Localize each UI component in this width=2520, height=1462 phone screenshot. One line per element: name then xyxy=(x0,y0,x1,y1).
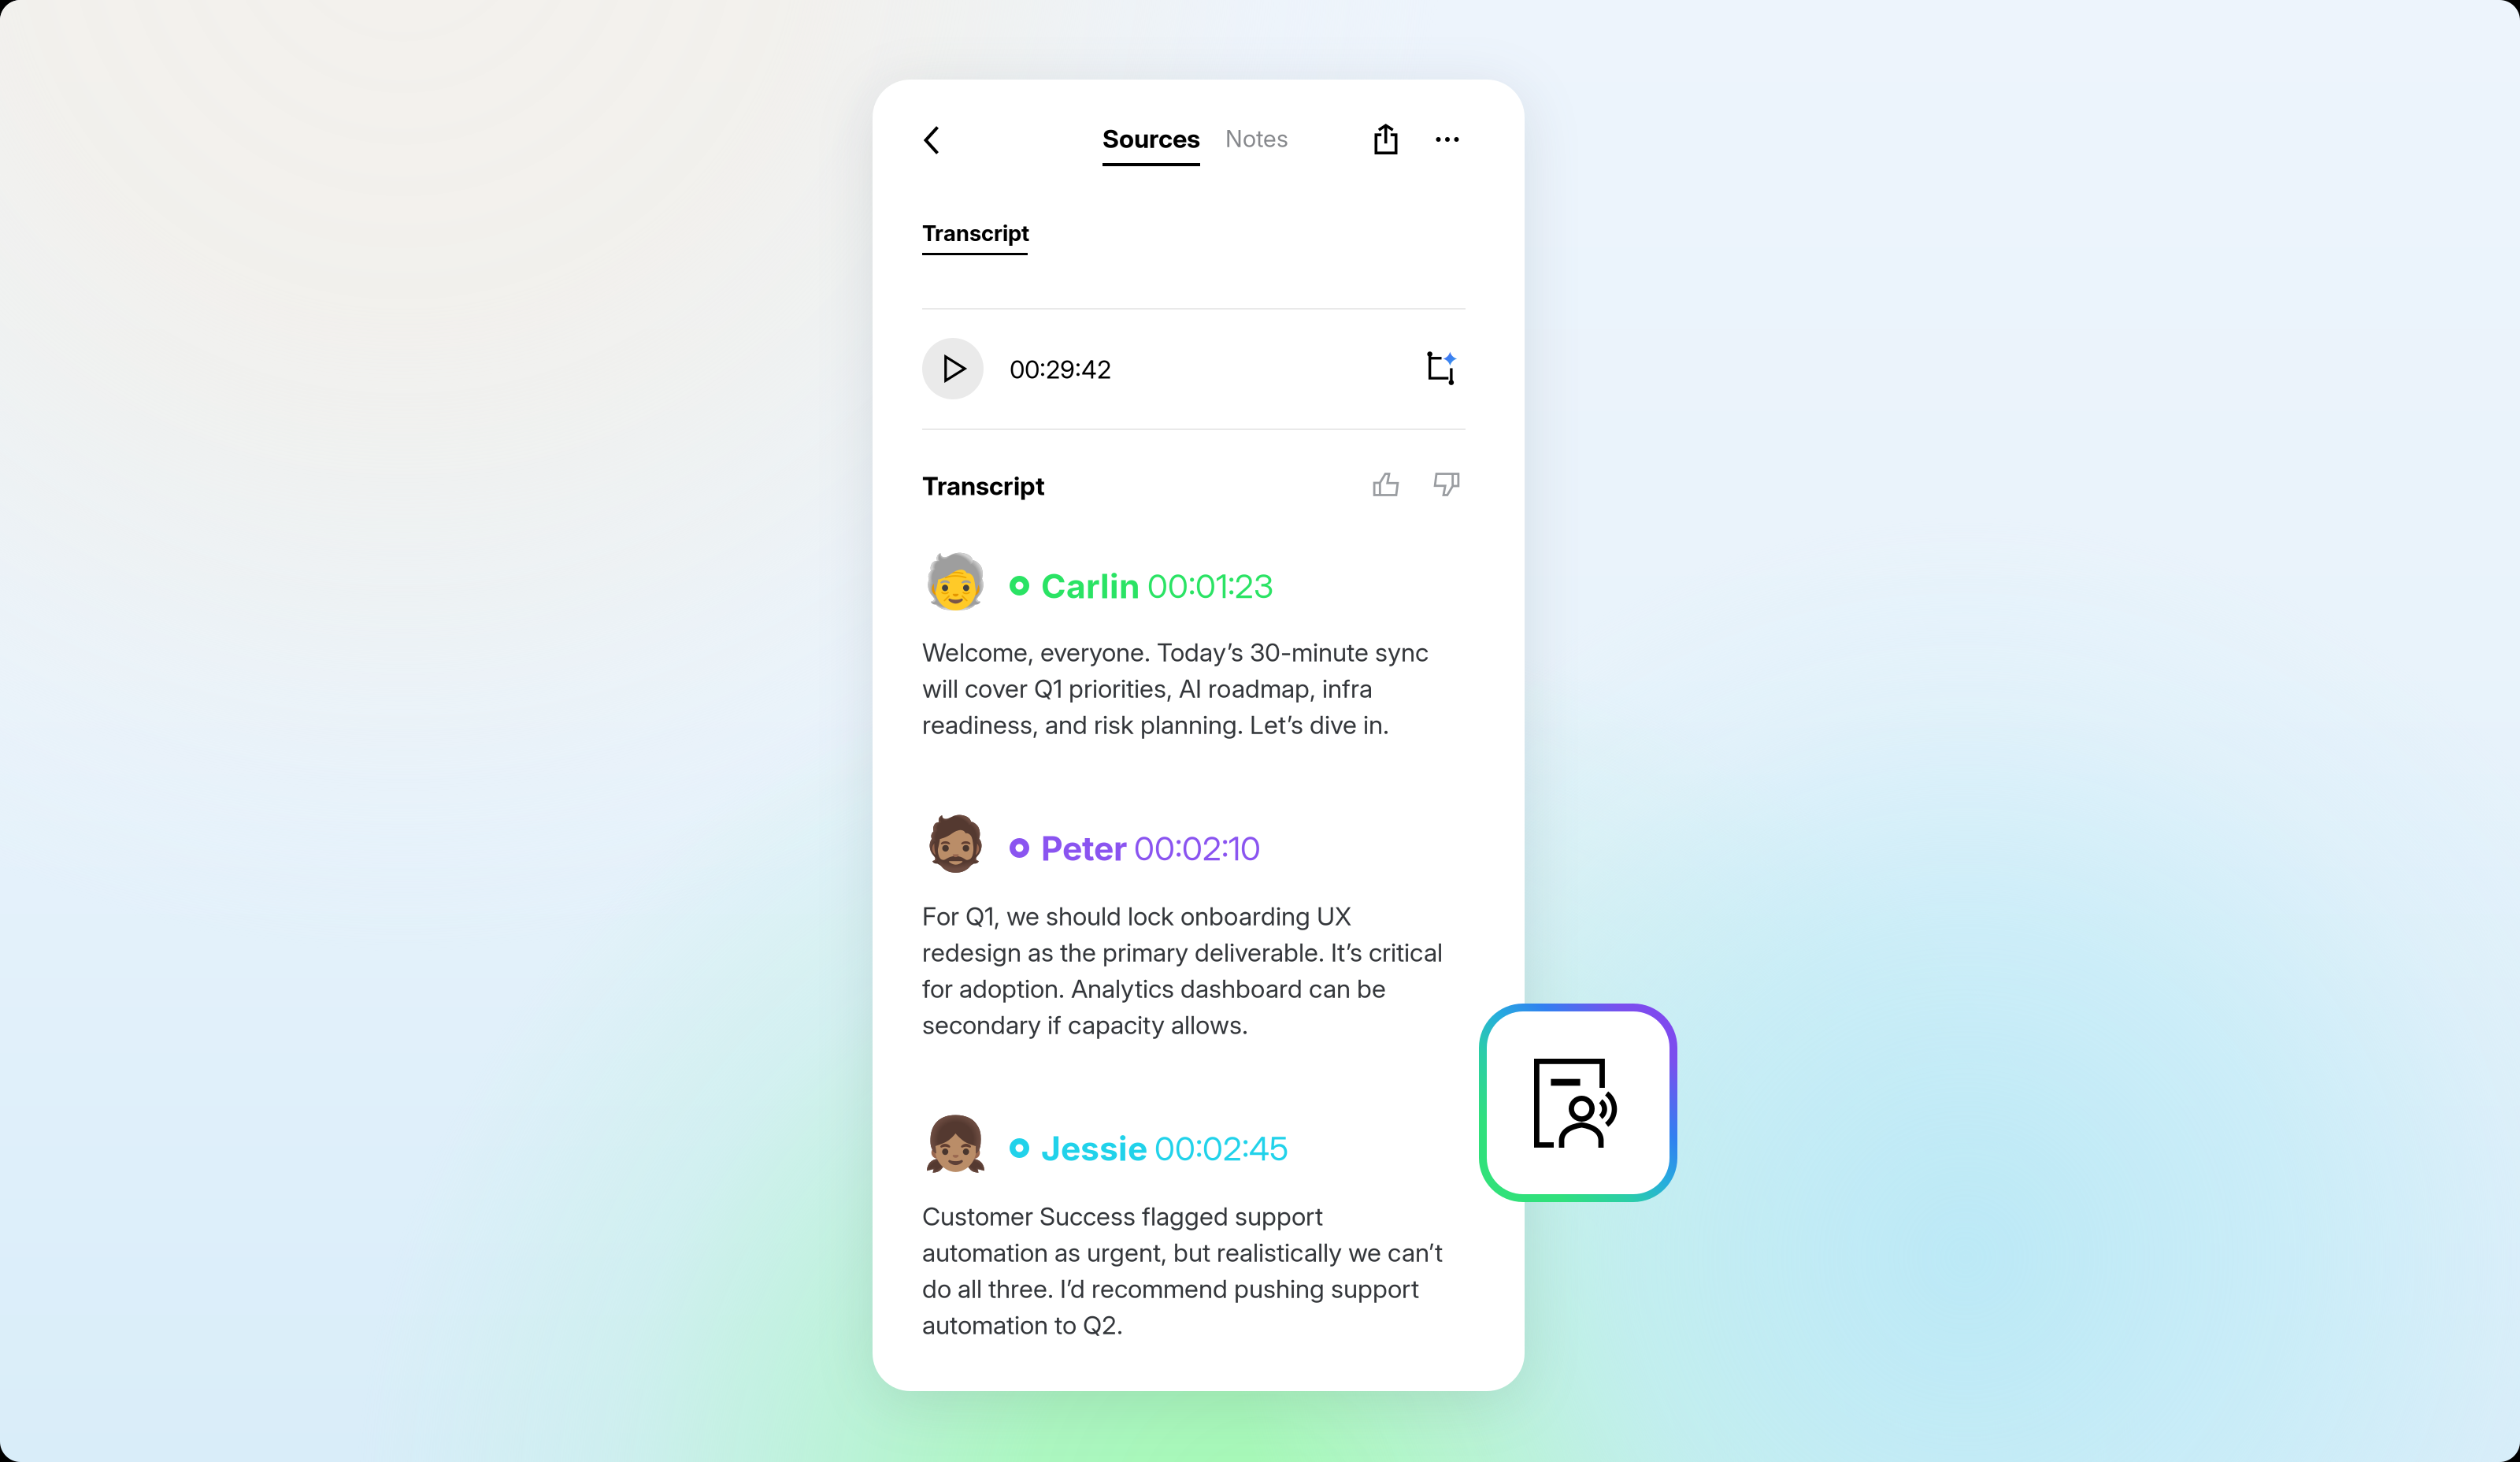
button[interactable]: Back xyxy=(910,118,954,162)
staticText: Sources xyxy=(1102,123,1200,154)
staticText: Transcript xyxy=(922,220,1029,246)
staticText: Carlin xyxy=(1041,566,1140,606)
staticText: automation to Q2. xyxy=(922,1310,1123,1340)
staticText: do all three. I’d recommend pushing supp… xyxy=(922,1273,1419,1304)
button[interactable]: More options xyxy=(1429,121,1466,158)
staticText: 00:01:23 xyxy=(1147,566,1273,606)
button[interactable]: Good transcript xyxy=(1367,466,1405,503)
button[interactable]: Notes xyxy=(1225,122,1320,155)
button[interactable]: Sources xyxy=(1102,122,1205,168)
staticText: redesign as the primary deliverable. It’… xyxy=(922,937,1443,968)
staticText: Peter xyxy=(1041,828,1127,869)
staticText: 00:29:42 xyxy=(1010,354,1111,384)
staticText: readiness, and risk planning. Let’s dive… xyxy=(922,709,1389,740)
staticText: will cover Q1 priorities, AI roadmap, in… xyxy=(922,673,1373,704)
button[interactable]: Transcript xyxy=(922,220,1032,258)
staticText: 👧🏽 xyxy=(923,1113,988,1174)
button[interactable]: Create clip xyxy=(1420,341,1466,390)
staticText: 00:02:10 xyxy=(1134,828,1261,868)
staticText: 🧓 xyxy=(923,551,988,612)
button[interactable]: Play xyxy=(922,338,984,399)
staticText: secondary if capacity allows. xyxy=(922,1010,1248,1040)
staticText: Customer Success flagged support xyxy=(922,1201,1323,1231)
staticText: 🧔🏽 xyxy=(923,813,988,874)
staticText: Notes xyxy=(1225,125,1288,153)
staticText: Welcome, everyone. Today’s 30-minute syn… xyxy=(922,637,1429,667)
staticText: for adoption. Analytics dashboard can be xyxy=(922,973,1386,1004)
staticText: Jessie xyxy=(1041,1128,1147,1169)
staticText: 00:02:45 xyxy=(1154,1128,1288,1168)
button[interactable]: Bad transcript xyxy=(1428,466,1466,503)
staticText: For Q1, we should lock onboarding UX xyxy=(922,901,1351,931)
button[interactable]: Share xyxy=(1367,121,1405,158)
staticText: automation as urgent, but realistically … xyxy=(922,1237,1443,1268)
staticText: Transcript xyxy=(922,471,1045,501)
